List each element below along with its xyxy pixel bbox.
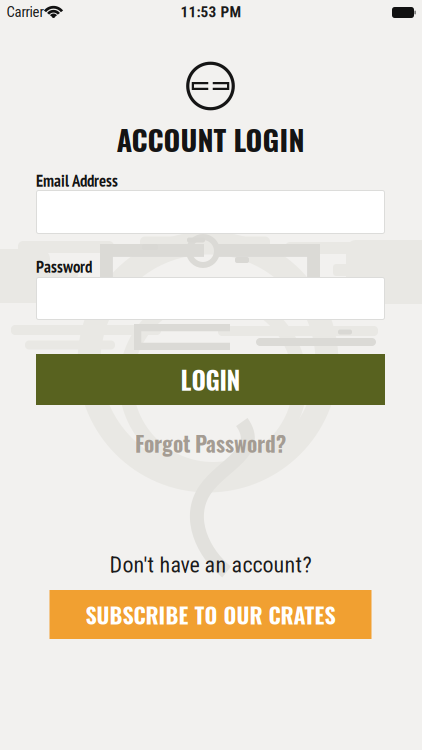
staticText: Don't have an account? <box>109 552 311 578</box>
button[interactable]: SUBSCRIBE TO OUR CRATES <box>49 590 371 639</box>
staticText: SUBSCRIBE TO OUR CRATES <box>85 598 335 631</box>
button[interactable]: LOGIN <box>36 354 385 405</box>
staticText: ACCOUNT LOGIN <box>116 118 304 160</box>
staticText: Carrier <box>6 3 43 21</box>
button[interactable]: Email Address <box>36 190 385 234</box>
staticText: Forgot Password? <box>135 427 286 459</box>
button[interactable]: Password <box>36 277 385 320</box>
staticText: 11:53 PM <box>180 3 241 21</box>
button[interactable]: Forgot Password? <box>135 427 286 459</box>
staticText: Email Address <box>36 170 118 191</box>
staticText: LOGIN <box>180 361 240 398</box>
staticText: Password <box>36 256 92 277</box>
